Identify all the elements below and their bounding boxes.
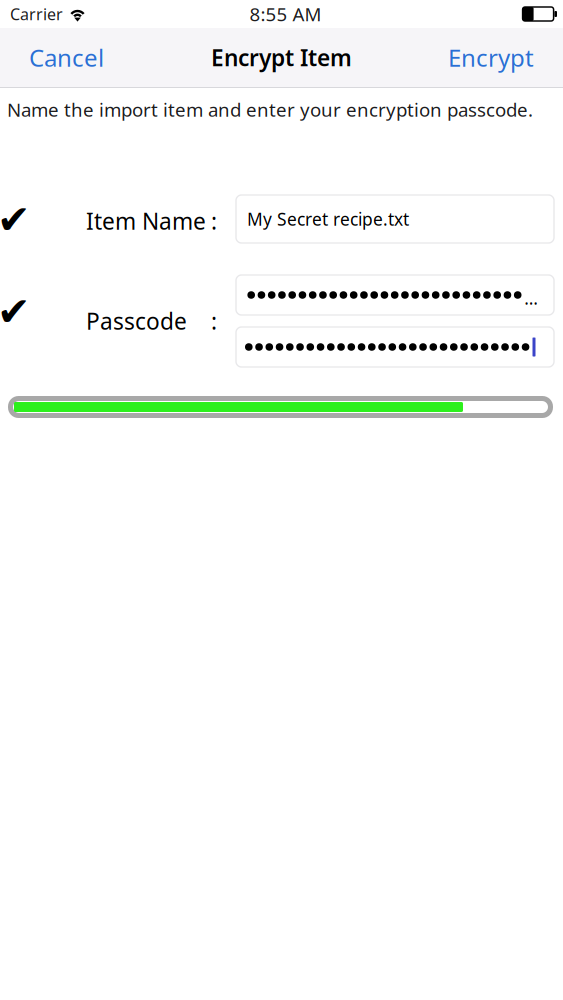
staticText: Item Name: [86, 206, 206, 236]
staticText: Carrier: [10, 3, 63, 25]
staticText: 8:55 AM: [249, 2, 321, 26]
button[interactable]: Encrypt: [440, 28, 563, 87]
button[interactable]: Confirm passcode: [236, 327, 554, 367]
staticText: Encrypt: [448, 42, 534, 73]
staticText: My Secret recipe.txt: [247, 207, 409, 230]
staticText: :: [211, 206, 217, 236]
staticText: :: [211, 306, 217, 336]
staticText: Encrypt Item: [211, 42, 352, 72]
button[interactable]: My Secret recipe.txt: [236, 195, 554, 243]
button[interactable]: Cancel: [0, 28, 112, 87]
staticText: ✔: [0, 197, 31, 242]
staticText: Name the import item and enter your encr…: [7, 97, 533, 122]
staticText: …: [524, 286, 538, 309]
staticText: Passcode: [86, 306, 187, 336]
staticText: ✔: [0, 289, 31, 334]
staticText: Cancel: [29, 42, 104, 73]
button[interactable]: Passcode: [236, 275, 554, 315]
